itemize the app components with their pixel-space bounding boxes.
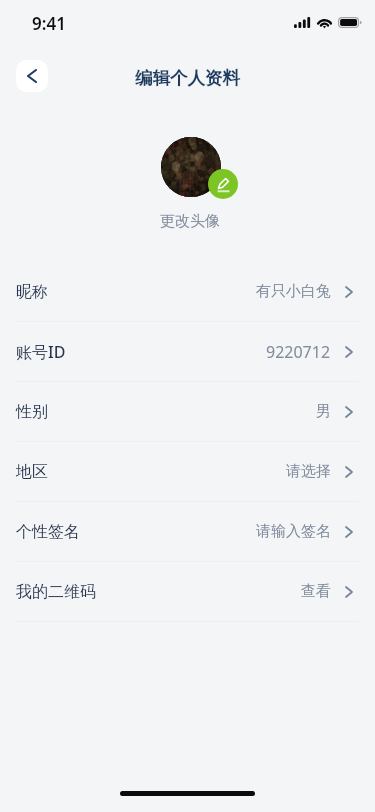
button[interactable]: 更改头像: [154, 208, 226, 235]
staticText: 男: [316, 402, 331, 421]
staticText: 有只小白兔: [256, 282, 331, 301]
staticText: 账号ID: [16, 341, 66, 363]
staticText: 9:41: [32, 12, 66, 35]
button[interactable]: 我的二维码: [0, 562, 375, 621]
staticText: 我的二维码: [16, 582, 96, 602]
button[interactable]: Back: [16, 60, 48, 92]
staticText: 更改头像: [160, 212, 220, 231]
staticText: 请输入签名: [256, 522, 331, 541]
staticText: 请选择: [286, 462, 331, 481]
button[interactable]: 地区: [0, 442, 375, 501]
staticText: 查看: [301, 582, 331, 601]
button[interactable]: 账号ID: [0, 322, 375, 381]
staticText: 9220712: [266, 341, 331, 363]
staticText: 地区: [16, 462, 48, 482]
button[interactable]: Edit avatar: [208, 169, 238, 199]
button[interactable]: 个性签名: [0, 502, 375, 561]
button[interactable]: 昵称: [0, 262, 375, 321]
staticText: 昵称: [16, 282, 48, 302]
staticText: 性别: [16, 402, 48, 422]
staticText: 编辑个人资料: [135, 67, 240, 89]
button[interactable]: Avatar: [161, 137, 221, 197]
staticText: 个性签名: [16, 522, 80, 542]
button[interactable]: 性别: [0, 382, 375, 441]
